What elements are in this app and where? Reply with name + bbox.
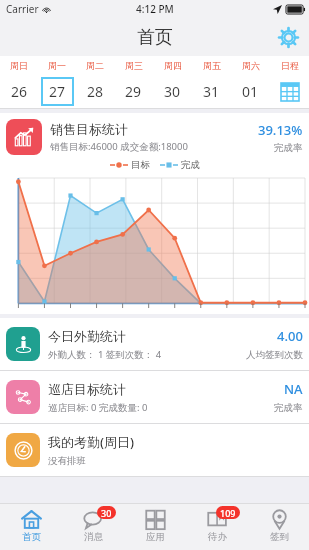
staticText: 首页	[22, 531, 41, 543]
staticText: 完成率	[274, 142, 303, 154]
staticText: 签到	[270, 531, 289, 543]
button[interactable]: 我的考勤(周日)	[0, 424, 309, 476]
staticText: 目标	[131, 159, 150, 171]
staticText: 外勤人数： 1 签到次数： 4	[48, 348, 162, 361]
button[interactable]: 28	[76, 75, 114, 108]
button[interactable]: 日程	[270, 75, 309, 108]
staticText: 人均签到次数	[246, 349, 303, 361]
staticText: 27	[49, 82, 66, 101]
staticText: 销售目标:46000 成交金额:18000	[50, 140, 188, 153]
staticText: 周六	[242, 60, 260, 71]
staticText: 4.00	[277, 327, 303, 345]
button[interactable]: 签到	[248, 504, 309, 550]
button[interactable]: 01	[231, 75, 270, 108]
staticText: 109	[220, 507, 236, 519]
button[interactable]: 29	[114, 75, 153, 108]
staticText: 日程	[281, 60, 299, 71]
staticText: 01	[242, 82, 259, 101]
button[interactable]: Settings	[273, 22, 303, 52]
staticText: 完成	[181, 159, 200, 171]
button[interactable]: 首页	[0, 504, 62, 550]
staticText: 巡店目标: 0 完成数量: 0	[48, 401, 148, 414]
staticText: 今日外勤统计	[48, 328, 126, 344]
staticText: 应用	[146, 531, 165, 543]
staticText: 28	[87, 82, 104, 101]
staticText: 4:12 PM	[136, 2, 174, 16]
staticText: 完成率	[274, 402, 303, 414]
staticText: 首页	[137, 26, 173, 49]
staticText: 销售目标统计	[50, 121, 128, 137]
button[interactable]: 109	[186, 504, 248, 550]
staticText: 30	[164, 82, 181, 101]
staticText: 消息	[84, 531, 103, 543]
button[interactable]: 巡店目标统计	[0, 371, 309, 423]
button[interactable]: 30	[62, 504, 124, 550]
staticText: 我的考勤(周日)	[48, 433, 135, 451]
button[interactable]: 应用	[124, 504, 186, 550]
staticText: 周四	[164, 60, 182, 71]
staticText: 巡店目标统计	[48, 381, 126, 397]
staticText: 30	[101, 507, 112, 519]
staticText: Carrier	[6, 2, 39, 16]
button[interactable]: 销售目标统计	[0, 113, 309, 314]
button[interactable]: 今日外勤统计	[0, 318, 309, 370]
staticText: 39.13%	[258, 121, 303, 139]
staticText: 周三	[125, 60, 143, 71]
staticText: 周五	[203, 60, 221, 71]
staticText: 26	[11, 82, 28, 101]
button[interactable]: 31	[192, 75, 231, 108]
staticText: 周二	[86, 60, 104, 71]
button[interactable]: 26	[0, 75, 38, 108]
staticText: 没有排班	[48, 455, 86, 467]
staticText: NA	[284, 380, 303, 398]
staticText: 周一	[48, 60, 66, 71]
staticText: 31	[203, 82, 220, 101]
staticText: 待办	[208, 531, 227, 543]
button[interactable]: 27	[38, 75, 76, 108]
staticText: 周日	[10, 60, 28, 71]
staticText: 29	[125, 82, 142, 101]
button[interactable]: 30	[153, 75, 192, 108]
